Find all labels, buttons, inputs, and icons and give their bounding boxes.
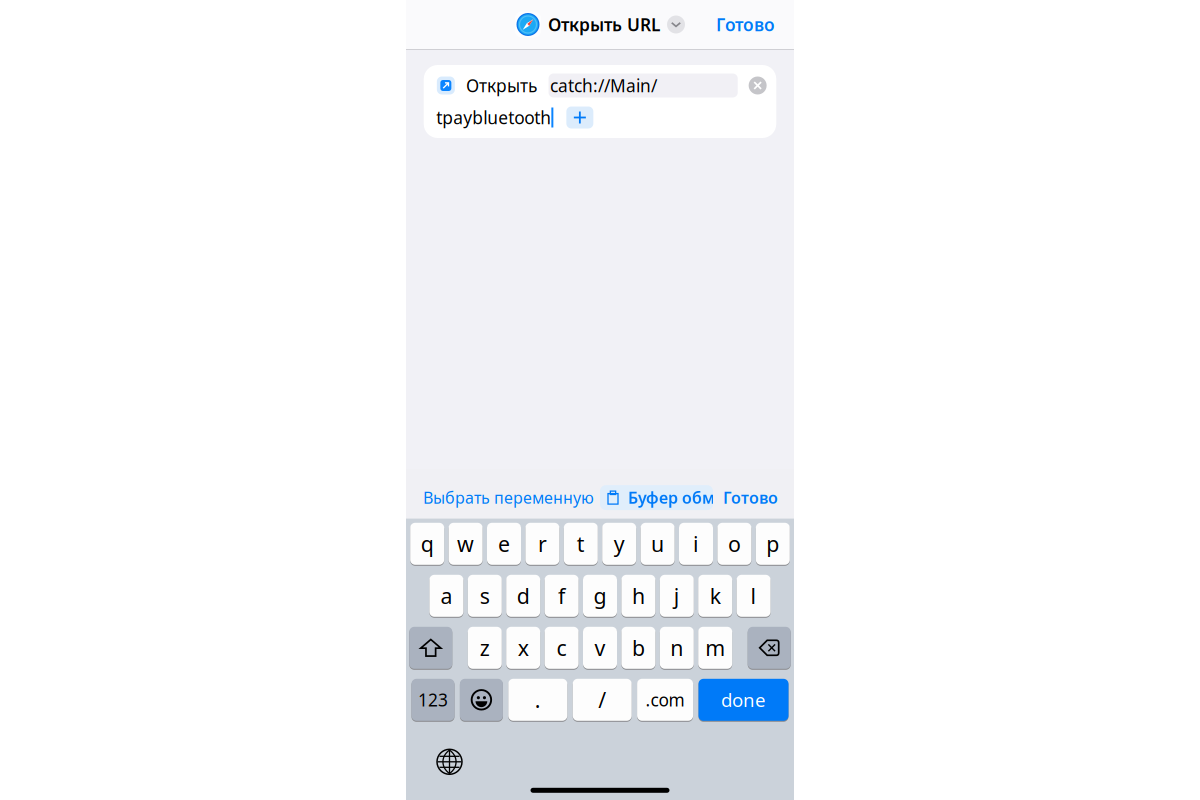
staticText: Готово [716, 13, 775, 36]
button[interactable]: Switch keyboard [428, 744, 471, 780]
staticText: n [670, 634, 683, 662]
staticText: Выбрать переменную [423, 487, 594, 508]
button[interactable]: f [545, 575, 579, 618]
staticText: v [594, 634, 605, 662]
button[interactable]: Выбрать переменную [423, 487, 594, 508]
staticText: tpaybluetooth [436, 106, 551, 129]
button[interactable]: y [602, 523, 636, 566]
button[interactable]: b [621, 627, 655, 670]
staticText: i [693, 530, 699, 558]
staticText: catch://Main/ [550, 74, 657, 97]
staticText: f [558, 582, 565, 610]
button[interactable]: r [525, 523, 559, 566]
button[interactable]: u [641, 523, 675, 566]
button[interactable]: s [468, 575, 502, 618]
staticText: b [632, 634, 645, 662]
staticText: 123 [418, 688, 448, 711]
staticText: j [674, 582, 680, 610]
button[interactable]: q [410, 523, 444, 566]
staticText: done [721, 687, 766, 712]
staticText: q [421, 530, 434, 558]
staticText: Готово [723, 487, 778, 508]
button[interactable]: a [429, 575, 463, 618]
staticText: Открыть [466, 74, 537, 97]
button[interactable]: .com [637, 679, 693, 722]
staticText: .com [646, 688, 685, 711]
button[interactable]: d [506, 575, 540, 618]
staticText: w [457, 530, 474, 558]
staticText: m [705, 634, 725, 662]
button[interactable]: Готово [723, 487, 778, 508]
staticText: Открыть URL [548, 13, 660, 36]
button[interactable]: w [449, 523, 483, 566]
button[interactable]: t [564, 523, 598, 566]
button[interactable]: Открыть URL [515, 11, 685, 37]
button[interactable] [748, 627, 791, 670]
button[interactable]: h [621, 575, 655, 618]
button[interactable]: x [506, 627, 540, 670]
staticText: s [480, 582, 490, 610]
staticText: d [517, 582, 530, 610]
button[interactable]: l [737, 575, 771, 618]
button[interactable]: done [698, 679, 788, 722]
staticText: a [440, 582, 452, 610]
staticText: h [632, 582, 645, 610]
button[interactable]: i [679, 523, 713, 566]
staticText: o [728, 530, 741, 558]
button[interactable]: . [508, 679, 567, 722]
staticText: k [710, 582, 721, 610]
staticText: l [751, 582, 757, 610]
staticText: r [538, 530, 547, 558]
button[interactable]: Открыть [424, 65, 776, 138]
staticText: p [766, 530, 779, 558]
staticText: Буфер обм [628, 487, 715, 508]
staticText: / [598, 686, 606, 714]
button[interactable]: p [756, 523, 790, 566]
button[interactable]: k [698, 575, 732, 618]
staticText: z [480, 634, 490, 662]
button[interactable]: v [583, 627, 617, 670]
button[interactable]: Буфер обм [600, 485, 713, 510]
button[interactable]: z [468, 627, 502, 670]
staticText: t [577, 530, 585, 558]
staticText: y [614, 530, 625, 558]
button[interactable]: n [660, 627, 694, 670]
button[interactable] [460, 679, 503, 722]
staticText: u [651, 530, 664, 558]
staticText: x [518, 634, 529, 662]
button[interactable]: c [545, 627, 579, 670]
button[interactable]: Готово [716, 13, 775, 36]
button[interactable]: / [573, 679, 632, 722]
button[interactable]: 123 [411, 679, 454, 722]
staticText: . [535, 686, 541, 714]
button[interactable]: m [698, 627, 732, 670]
button[interactable]: e [487, 523, 521, 566]
button[interactable]: o [717, 523, 751, 566]
button[interactable] [409, 627, 452, 670]
button[interactable]: j [660, 575, 694, 618]
button[interactable]: g [583, 575, 617, 618]
staticText: c [557, 634, 567, 662]
staticText: g [593, 582, 606, 610]
staticText: e [498, 530, 510, 558]
